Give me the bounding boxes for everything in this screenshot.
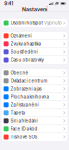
button[interactable]: Obecné (2, 69, 67, 77)
button[interactable]: Osobní hotspot (2, 19, 67, 27)
staticText: Oznámení (10, 33, 31, 38)
staticText: Tapeta (10, 110, 24, 115)
staticText: Osobní hotspot (10, 20, 42, 26)
button[interactable]: Face ID a kód (2, 125, 67, 133)
staticText: Zvuky a haptika (10, 41, 40, 46)
button[interactable]: Soustředění (2, 48, 67, 56)
staticText: Tísňové SOS (10, 134, 37, 140)
button[interactable]: Zobrazení a jas (2, 85, 67, 93)
button[interactable]: Oznámení (2, 32, 67, 40)
staticText: Čas u obrazovky (10, 57, 43, 63)
staticText: Vypnuto (44, 20, 62, 26)
staticText: Nastavení (22, 6, 47, 12)
button[interactable]: Plocha a knihovna (2, 93, 67, 101)
button[interactable]: Tísňové SOS (2, 133, 67, 141)
staticText: Face ID a kód (10, 126, 37, 131)
button[interactable]: Čas u obrazovky (2, 56, 67, 64)
staticText: Plocha a knihovna (10, 94, 48, 99)
staticText: Ovládací centrum (10, 78, 47, 83)
staticText: Soustředění (10, 49, 37, 54)
button[interactable]: Ovládací centrum (2, 77, 67, 85)
button[interactable]: Tapeta (2, 109, 67, 117)
staticText: Siri a hledání (10, 118, 37, 123)
staticText: Zpřístupnění (10, 102, 38, 107)
staticText: 9:41 (4, 1, 13, 6)
staticText: Obecné (10, 70, 28, 75)
staticText: Zobrazení a jas (10, 86, 41, 91)
button[interactable]: Siri a hledání (2, 117, 67, 125)
button[interactable]: Zpřístupnění (2, 101, 67, 109)
button[interactable]: Zvuky a haptika (2, 40, 67, 48)
